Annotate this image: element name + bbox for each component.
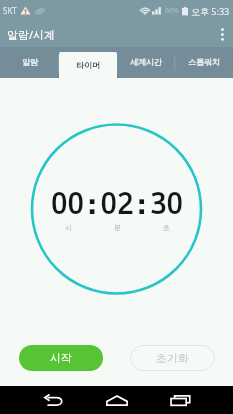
- button[interactable]: Recent apps: [158, 386, 202, 414]
- staticText: SKT: [3, 5, 17, 16]
- staticText: 타이머: [76, 60, 100, 70]
- staticText: 알람/시계: [7, 27, 56, 42]
- staticText: 세계시간: [130, 57, 162, 67]
- button[interactable]: 타이머: [59, 52, 117, 78]
- button[interactable]: 스톱워치: [175, 47, 233, 78]
- staticText: 시: [65, 223, 72, 232]
- staticText: 스톱워치: [188, 57, 220, 67]
- button[interactable]: Back: [31, 386, 75, 414]
- button[interactable]: More options: [211, 21, 233, 47]
- button[interactable]: 세계시간: [117, 47, 175, 78]
- button[interactable]: 알람: [0, 47, 59, 78]
- button[interactable]: Home: [94, 386, 139, 414]
- staticText: 초: [163, 223, 170, 232]
- staticText: 00:02:30: [51, 189, 183, 222]
- staticText: 알람: [22, 57, 38, 67]
- staticText: 66%: [165, 6, 179, 16]
- button[interactable]: 시작: [19, 345, 103, 371]
- staticText: 초기화: [156, 351, 189, 365]
- staticText: 오후 5:33: [191, 5, 230, 17]
- staticText: 시작: [50, 351, 72, 365]
- staticText: 분: [114, 223, 121, 232]
- button[interactable]: 초기화: [130, 345, 215, 371]
